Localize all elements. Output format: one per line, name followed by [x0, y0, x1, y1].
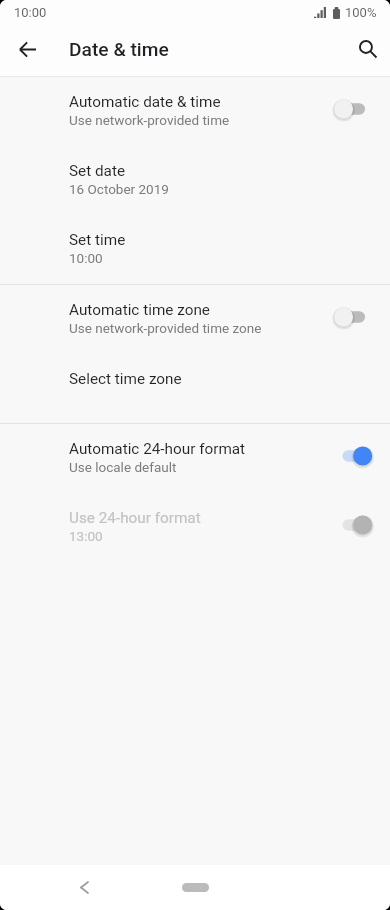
button[interactable]: Back	[5, 27, 49, 71]
staticText: 100%	[345, 5, 377, 20]
button[interactable]: Set date	[0, 146, 390, 215]
button[interactable]: Home	[167, 874, 223, 900]
button[interactable]: Toggle Automatic time zone	[325, 300, 383, 334]
button[interactable]: Automatic 24-hour format	[0, 424, 390, 493]
staticText: Use network-provided time zone	[69, 320, 262, 336]
staticText: Automatic time zone	[69, 301, 210, 319]
button[interactable]: Use 24-hour format	[0, 493, 390, 562]
staticText: 13:00	[69, 528, 103, 544]
staticText: Use network-provided time	[69, 112, 230, 128]
staticText: 10:00	[69, 250, 103, 266]
button[interactable]: Toggle Use 24-hour format	[325, 508, 383, 542]
staticText: Automatic 24-hour format	[69, 440, 246, 458]
button[interactable]: Automatic date & time	[0, 77, 390, 146]
button[interactable]: Toggle Automatic date & time	[325, 92, 383, 126]
staticText: Date & time	[69, 38, 169, 61]
staticText: Automatic date & time	[69, 93, 221, 111]
button[interactable]: Back	[68, 871, 100, 903]
staticText: 16 October 2019	[69, 181, 169, 197]
button[interactable]: Automatic time zone	[0, 285, 390, 354]
staticText: Set date	[69, 162, 126, 180]
staticText: Select time zone	[69, 370, 182, 388]
staticText: Use locale default	[69, 459, 177, 475]
staticText: Set time	[69, 231, 126, 249]
staticText: Use 24-hour format	[69, 509, 201, 527]
button[interactable]: Set time	[0, 215, 390, 284]
button[interactable]: Toggle Automatic 24-hour format	[325, 439, 383, 473]
button[interactable]: Search	[346, 27, 390, 71]
button[interactable]: Select time zone	[0, 354, 390, 423]
staticText: 10:00	[14, 5, 47, 20]
